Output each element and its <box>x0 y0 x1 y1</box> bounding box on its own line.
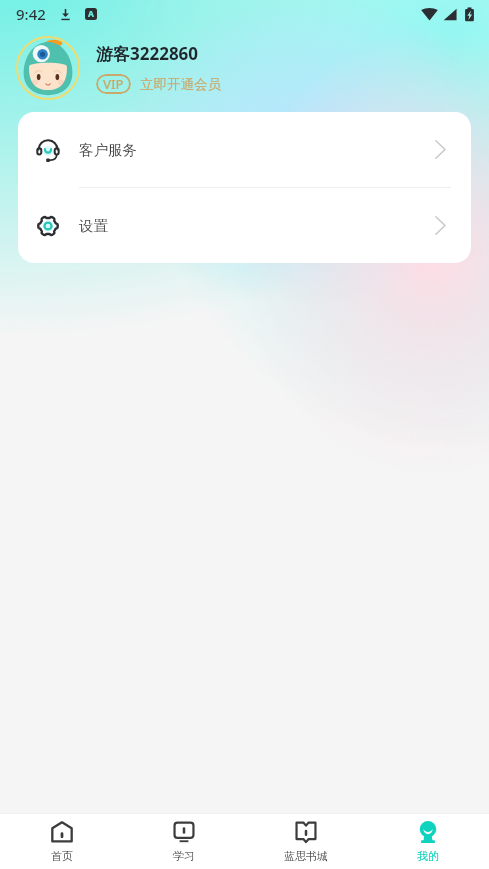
button[interactable]: 客户服务 <box>18 112 471 187</box>
button[interactable]: Profile avatar <box>16 36 80 100</box>
button[interactable]: 蓝思书城 <box>245 814 367 869</box>
button[interactable]: 我的 <box>367 814 489 869</box>
staticText: A <box>88 8 94 20</box>
staticText: 设置 <box>79 217 108 235</box>
button[interactable]: VIP <box>96 74 131 94</box>
button[interactable]: 学习 <box>123 814 245 869</box>
staticText: 客户服务 <box>79 141 137 159</box>
staticText: 学习 <box>173 849 195 863</box>
button[interactable]: 设置 <box>18 188 471 263</box>
button[interactable]: 首页 <box>0 814 123 869</box>
staticText: 9:42 <box>16 4 46 24</box>
staticText: 立即开通会员 <box>140 76 221 93</box>
staticText: 我的 <box>417 849 439 863</box>
staticText: 蓝思书城 <box>284 849 328 863</box>
staticText: 游客3222860 <box>96 42 199 65</box>
staticText: 首页 <box>51 849 73 863</box>
staticText: VIP <box>103 75 124 93</box>
